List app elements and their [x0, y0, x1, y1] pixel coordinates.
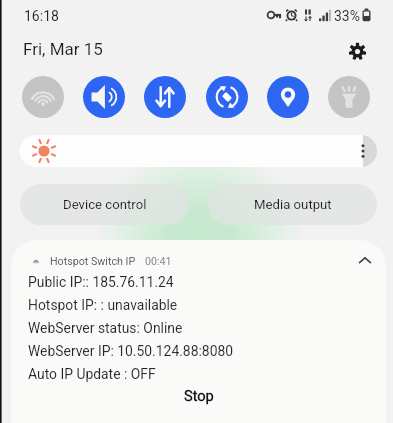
button[interactable]: Wi-Fi [22, 76, 64, 118]
staticText: Hotspot Switch IP [50, 255, 136, 268]
button[interactable]: Settings [343, 37, 371, 65]
staticText: 33% [334, 8, 360, 24]
staticText: Fri, Mar 15 [23, 39, 103, 59]
staticText: Auto IP Update : OFF [28, 366, 156, 382]
button[interactable]: Media output [208, 184, 377, 225]
staticText: Public IP:: 185.76.11.24 [28, 274, 174, 290]
staticText: WebServer IP: 10.50.124.88:8080 [28, 343, 234, 359]
button[interactable]: Flashlight [328, 76, 370, 118]
button[interactable]: Device control [20, 184, 189, 225]
staticText: Device control [63, 197, 147, 212]
button[interactable]: Location [267, 76, 309, 118]
button[interactable]: Brightness [19, 135, 377, 167]
button[interactable]: Mobile data [144, 76, 186, 118]
staticText: Hotspot IP: : unavailable [28, 297, 178, 313]
staticText: 16:18 [24, 8, 59, 24]
button[interactable]: Sound [83, 76, 125, 118]
staticText: 00:41 [145, 255, 172, 267]
staticText: WebServer status: Online [28, 320, 183, 336]
staticText: Stop [184, 387, 214, 404]
staticText: Media output [254, 197, 332, 212]
button[interactable]: Auto rotate [206, 76, 248, 118]
button[interactable]: Collapse notification [353, 253, 377, 267]
button[interactable]: Stop [11, 379, 386, 411]
